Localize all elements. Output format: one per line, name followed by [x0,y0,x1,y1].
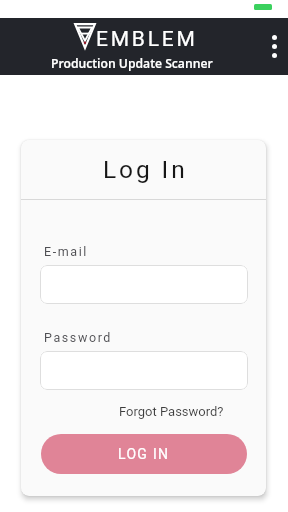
button[interactable]: Forgot Password? [119,404,224,419]
button[interactable] [40,265,248,304]
staticText: Password [44,330,113,345]
staticText: LOG IN [118,446,170,462]
staticText: Production Update Scanner [51,55,213,72]
staticText: E-mail [44,244,88,259]
button[interactable] [40,351,248,390]
staticText: Log In [103,155,188,184]
button[interactable]: LOG IN [41,434,247,474]
button[interactable]: More options [264,29,288,64]
staticText: EMBLEM [96,27,198,52]
